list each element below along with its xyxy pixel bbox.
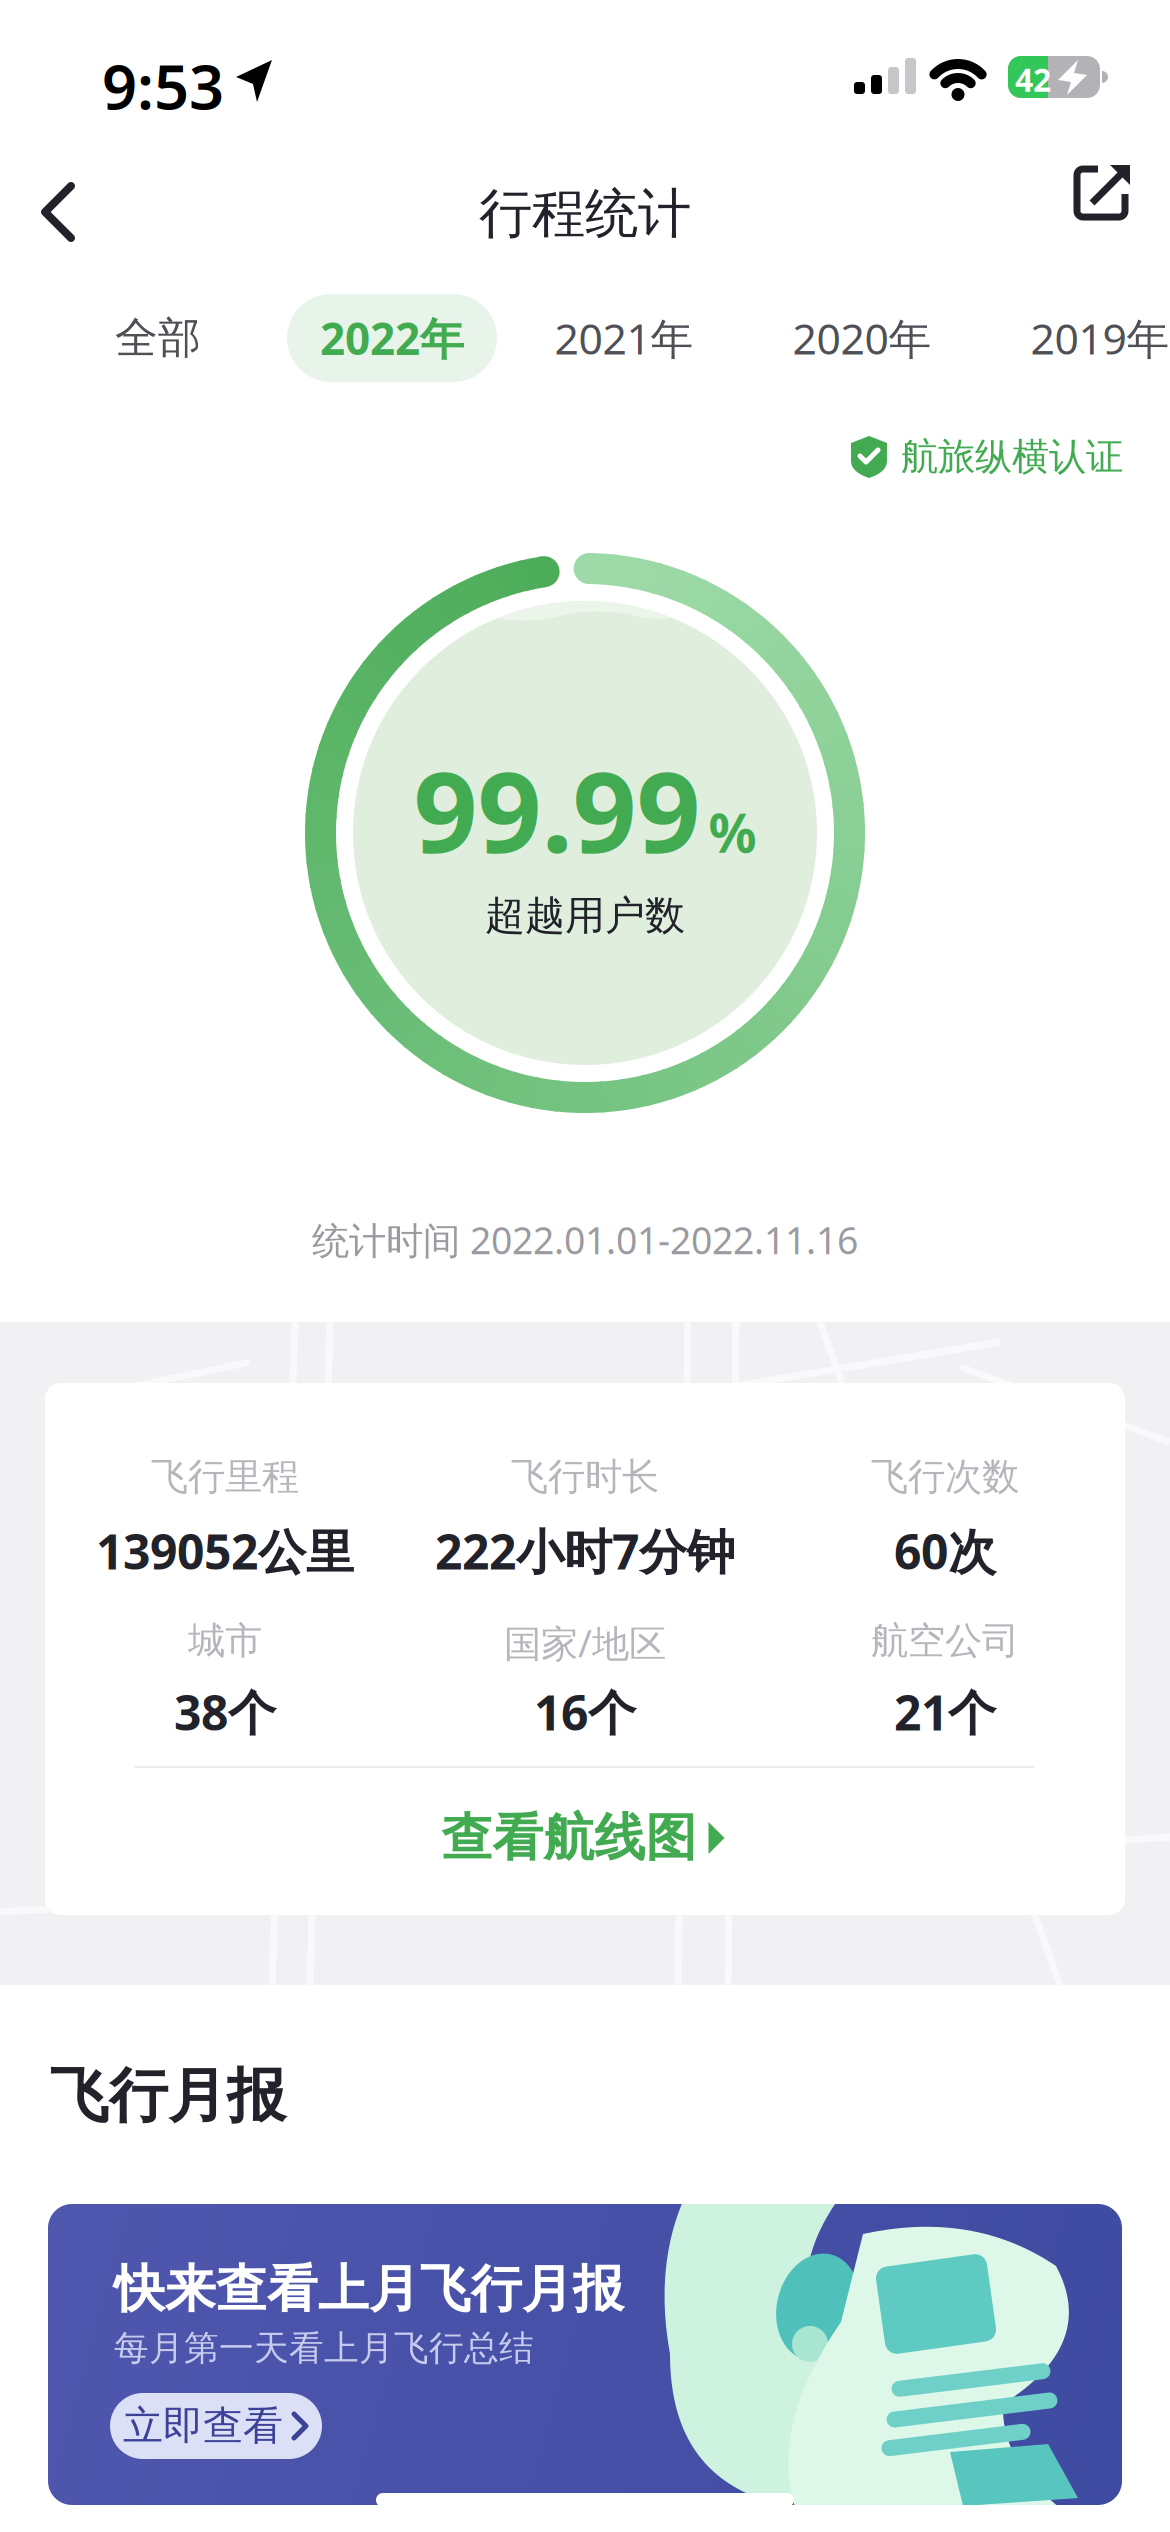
staticText: 222小时7分钟 [435, 1519, 735, 1583]
staticText: 航旅纵横认证 [901, 434, 1123, 480]
staticText: 42 [1015, 58, 1051, 100]
staticText: 统计时间 2022.01.01-2022.11.16 [312, 1215, 858, 1265]
staticText: 21个 [894, 1680, 996, 1744]
staticText: 38个 [174, 1680, 276, 1744]
staticText: 9:53 [102, 45, 224, 126]
staticText: 航空公司 [871, 1618, 1019, 1664]
button[interactable]: 航旅纵横认证 [845, 428, 1135, 490]
staticText: 全部 [115, 312, 201, 364]
staticText: 查看航线图 [441, 1807, 696, 1869]
staticText: 每月第一天看上月飞行总结 [114, 2327, 534, 2370]
staticText: 飞行月报 [50, 2060, 286, 2132]
button[interactable]: 全部 [78, 294, 238, 382]
button[interactable]: 查看航线图 [45, 1783, 1125, 1893]
staticText: 超越用户数 [485, 891, 685, 940]
staticText: 快来查看上月飞行月报 [114, 2258, 624, 2320]
button[interactable]: 立即查看 [110, 2393, 322, 2459]
button[interactable]: 2019年 [1000, 294, 1170, 382]
staticText: 99.99 [413, 735, 700, 884]
staticText: 行程统计 [479, 181, 691, 246]
staticText: 2019年 [1030, 310, 1169, 366]
staticText: 飞行里程 [151, 1454, 299, 1500]
staticText: 139052公里 [96, 1519, 354, 1583]
staticText: 60次 [894, 1519, 996, 1583]
button[interactable] [1051, 160, 1155, 264]
button[interactable]: 2022年 [287, 294, 497, 382]
button[interactable] [25, 160, 129, 264]
staticText: 立即查看 [123, 2401, 283, 2450]
staticText: % [708, 797, 756, 867]
staticText: 城市 [188, 1618, 262, 1664]
button[interactable]: 2021年 [524, 294, 724, 382]
staticText: 2021年 [554, 310, 693, 366]
staticText: 16个 [534, 1680, 636, 1744]
staticText: 2022年 [320, 309, 464, 367]
staticText: 飞行次数 [871, 1454, 1019, 1500]
staticText: 国家/地区 [504, 1618, 666, 1668]
button[interactable]: 2020年 [762, 294, 962, 382]
staticText: 飞行时长 [511, 1454, 659, 1500]
button[interactable]: 快来查看上月飞行月报 [48, 2204, 1122, 2505]
staticText: 2020年 [792, 310, 931, 366]
